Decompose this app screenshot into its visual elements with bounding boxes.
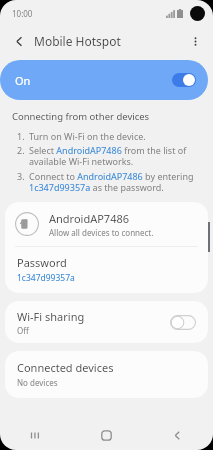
- button[interactable]: Recent apps: [0, 420, 71, 450]
- button[interactable]: AndroidAP7486: [5, 202, 208, 246]
- staticText: Connected devices: [17, 360, 114, 375]
- staticText: No devices: [17, 377, 58, 388]
- button[interactable]: Home: [71, 420, 142, 450]
- staticText: 1c347d99357a: [17, 272, 75, 284]
- staticText: Turn on Wi-Fi on the device.: [29, 130, 146, 142]
- button[interactable]: Connected devices: [5, 351, 208, 398]
- button[interactable]: Wi-Fi sharing: [5, 301, 208, 343]
- button[interactable]: On: [0, 60, 208, 100]
- staticText: 10:00: [12, 8, 33, 19]
- button[interactable]: Password: [5, 247, 208, 293]
- button[interactable]: Back: [6, 28, 32, 54]
- staticText: Mobile Hotspot: [34, 33, 121, 49]
- staticText: AndroidAP7486: [49, 211, 130, 226]
- staticText: On: [15, 73, 31, 88]
- staticText: Select AndroidAP7486 from the list of av…: [29, 144, 201, 168]
- staticText: 2.: [17, 144, 29, 156]
- staticText: 1.: [17, 130, 29, 142]
- staticText: 3.: [17, 170, 29, 182]
- staticText: Connecting from other devices: [12, 110, 150, 123]
- staticText: Allow all devices to connect.: [49, 227, 154, 238]
- staticText: Off: [17, 325, 29, 336]
- button[interactable]: More options: [182, 28, 208, 54]
- staticText: Password: [17, 255, 67, 270]
- button[interactable]: Back: [142, 420, 213, 450]
- staticText: Connect to AndroidAP7486 by entering 1c3…: [29, 170, 201, 194]
- staticText: Wi-Fi sharing: [17, 309, 85, 324]
